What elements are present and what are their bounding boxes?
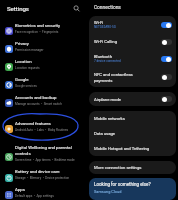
staticText: Wi-Fi Calling: [94, 39, 117, 44]
button[interactable]: NFC and contactless payments: [89, 67, 176, 87]
button[interactable]: More connection settings: [89, 161, 176, 174]
staticText: Default apps • App settings: [15, 194, 54, 198]
button[interactable]: Off: [161, 74, 172, 80]
staticText: Accounts and backup: [15, 95, 57, 100]
button[interactable]: Digital Wellbeing and parental controls: [0, 142, 87, 165]
button[interactable]: On: [161, 56, 172, 62]
button[interactable]: Advanced features: [0, 117, 87, 135]
staticText: Mobile networks: [94, 116, 125, 121]
button[interactable]: Off: [161, 39, 172, 45]
staticText: Android Auto • Labs • Bixby Routines: [15, 128, 69, 132]
staticText: More connection settings: [94, 165, 142, 170]
button[interactable]: Biometrics and security: [0, 19, 87, 37]
staticText: Biometrics and security: [15, 23, 60, 28]
button[interactable]: Mobile networks: [89, 111, 176, 126]
staticText: Privacy: [15, 41, 29, 46]
staticText: Connections: [94, 5, 121, 11]
button[interactable]: Wi-Fi Calling: [89, 33, 176, 50]
staticText: Storage • Memory • Device protection: [15, 176, 70, 180]
staticText: Wi-Fi: [94, 20, 104, 25]
staticText: NETGEAR90-5G: [94, 25, 116, 29]
staticText: Screen time • App timers • Bedtime mode: [15, 158, 75, 162]
button[interactable]: Data usage: [89, 126, 176, 141]
button[interactable]: Looking for something else?: [89, 178, 176, 200]
button[interactable]: Accounts and backup: [0, 91, 87, 109]
staticText: Permission manager: [15, 48, 44, 52]
staticText: Face recognition • Fingerprints: [15, 30, 59, 34]
staticText: Location: [15, 59, 32, 64]
button[interactable]: Airplane mode: [89, 92, 176, 106]
staticText: Battery and device care: [15, 169, 60, 174]
button[interactable]: Search: [71, 3, 82, 14]
button[interactable]: Off: [161, 96, 172, 102]
button[interactable]: Apps: [0, 184, 87, 200]
button[interactable]: Mobile Hotspot and Tethering: [89, 141, 176, 156]
button[interactable]: On: [161, 22, 172, 28]
staticText: Digital Wellbeing and parental controls: [15, 145, 72, 156]
button[interactable]: Bluetooth: [89, 50, 176, 67]
staticText: Mobile Hotspot and Tethering: [94, 146, 150, 151]
staticText: NFC and contactless payments: [94, 72, 133, 83]
button[interactable]: Location: [0, 55, 87, 73]
staticText: Samsung Cloud: [94, 189, 122, 194]
staticText: Google services: [15, 84, 37, 88]
button[interactable]: Privacy: [0, 37, 87, 55]
staticText: Bluetooth: [94, 54, 112, 59]
button[interactable]: Wi-Fi: [89, 16, 176, 33]
staticText: 7 device connected: [94, 59, 121, 63]
button[interactable]: Google: [0, 73, 87, 91]
staticText: Data usage: [94, 131, 116, 136]
staticText: Google: [15, 77, 29, 82]
staticText: Airplane mode: [94, 97, 122, 102]
staticText: Looking for something else?: [94, 182, 151, 187]
staticText: Apps: [15, 187, 25, 192]
staticText: Settings: [7, 5, 29, 12]
button[interactable]: Battery and device care: [0, 165, 87, 184]
staticText: Manage accounts • Smart switch: [15, 102, 62, 106]
staticText: Advanced features: [15, 121, 51, 126]
staticText: Location requests: [15, 66, 40, 70]
